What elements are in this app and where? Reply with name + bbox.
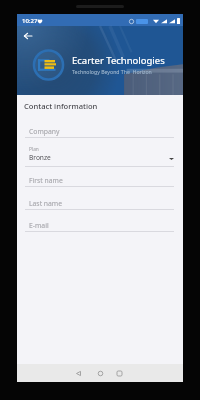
staticText: Plan (29, 146, 39, 153)
button[interactable]: E-mail (25, 217, 174, 232)
staticText: First name (29, 176, 63, 185)
staticText: Ecarter Technologies (72, 54, 165, 67)
button[interactable]: Plan (25, 145, 174, 167)
button[interactable]: Back (20, 28, 35, 43)
staticText: 10:27 (22, 17, 38, 25)
staticText: Last name (29, 199, 63, 208)
staticText: Bronze (29, 153, 51, 162)
staticText: Company (29, 127, 60, 136)
button[interactable]: Company (25, 123, 174, 138)
button[interactable]: Last name (25, 195, 174, 210)
button[interactable]: First name (25, 172, 174, 187)
button[interactable]: Recent apps (109, 364, 130, 382)
staticText: Contact information (24, 101, 98, 111)
button[interactable]: Home (90, 364, 111, 382)
staticText: Technology Beyond The Horizon (72, 68, 152, 75)
button[interactable]: Back (68, 364, 89, 382)
staticText: E-mail (29, 221, 49, 230)
